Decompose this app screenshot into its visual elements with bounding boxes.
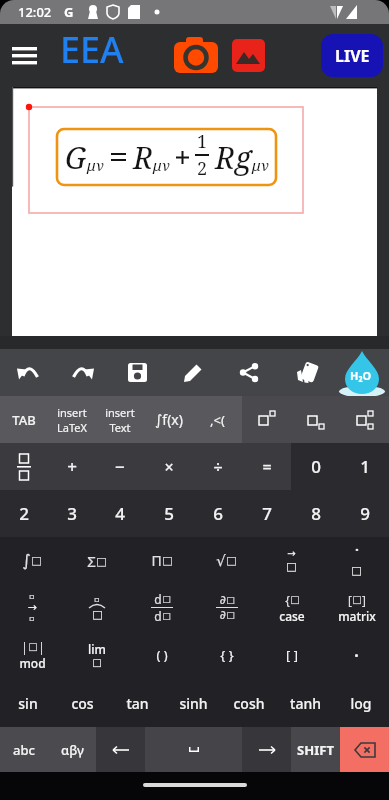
button[interactable]: d bbox=[129, 584, 194, 631]
staticText: [ ] bbox=[286, 646, 298, 664]
staticText: d bbox=[154, 591, 162, 607]
button[interactable]: ( ) bbox=[129, 631, 194, 679]
button[interactable]: [ ] bbox=[259, 631, 324, 679]
button[interactable]: { } bbox=[194, 631, 259, 679]
button[interactable]: ˙ bbox=[324, 537, 389, 584]
staticText: ∫f(x) bbox=[155, 410, 183, 429]
staticText: = bbox=[262, 456, 272, 478]
button[interactable] bbox=[0, 349, 55, 396]
button[interactable] bbox=[55, 349, 110, 396]
button[interactable]: tan bbox=[110, 679, 165, 727]
button[interactable] bbox=[8, 39, 40, 71]
staticText: sin bbox=[18, 694, 38, 713]
button[interactable]: SHIFT bbox=[291, 727, 340, 772]
staticText: ∫ bbox=[22, 551, 31, 570]
staticText: R bbox=[215, 137, 235, 178]
staticText: 12:02 bbox=[18, 3, 52, 21]
button[interactable] bbox=[230, 37, 266, 73]
button[interactable]: Σ bbox=[64, 537, 129, 584]
button[interactable]: √ bbox=[194, 537, 259, 584]
button[interactable]: 9 bbox=[340, 490, 389, 537]
staticText: log bbox=[350, 694, 372, 713]
staticText: 9 bbox=[360, 502, 370, 525]
button[interactable]: lim bbox=[64, 631, 129, 679]
button[interactable]: · bbox=[324, 631, 389, 679]
button[interactable]: + bbox=[48, 443, 96, 490]
button[interactable]: sinh bbox=[165, 679, 221, 727]
staticText: cos bbox=[71, 694, 94, 713]
button[interactable]: 8 bbox=[291, 490, 340, 537]
button[interactable]: 7 bbox=[242, 490, 291, 537]
button[interactable]: 1 bbox=[340, 443, 389, 490]
button[interactable]: ▫ bbox=[64, 584, 129, 631]
staticText: ˙ bbox=[355, 545, 359, 564]
staticText: case bbox=[279, 608, 305, 624]
button[interactable]: 6 bbox=[193, 490, 242, 537]
button[interactable] bbox=[145, 727, 242, 772]
button[interactable]: cos bbox=[55, 679, 110, 727]
staticText: □ bbox=[92, 657, 102, 669]
button[interactable] bbox=[0, 443, 48, 490]
button[interactable]: ∂ bbox=[194, 584, 259, 631]
staticText: | bbox=[38, 639, 45, 655]
button[interactable] bbox=[221, 349, 277, 396]
staticText: cosh bbox=[233, 694, 265, 713]
button[interactable]: 5 bbox=[144, 490, 193, 537]
button[interactable]: ∫f(x) bbox=[144, 396, 193, 443]
button[interactable]: → bbox=[259, 537, 324, 584]
button[interactable]: 2 bbox=[0, 490, 48, 537]
staticText: 1 bbox=[197, 129, 208, 154]
button[interactable] bbox=[173, 35, 219, 75]
staticText: tan bbox=[126, 694, 149, 713]
button[interactable]: ▫ bbox=[0, 584, 64, 631]
staticText: □ bbox=[162, 554, 173, 567]
button[interactable]: = bbox=[242, 443, 291, 490]
staticText: + bbox=[67, 455, 77, 478]
staticText: × bbox=[164, 456, 174, 478]
button[interactable]: | bbox=[0, 631, 64, 679]
button[interactable]: cosh bbox=[221, 679, 277, 727]
button[interactable] bbox=[291, 396, 340, 443]
button[interactable]: abc bbox=[0, 727, 48, 772]
button[interactable]: insert bbox=[96, 396, 144, 443]
staticText: | bbox=[21, 639, 28, 655]
button[interactable] bbox=[242, 396, 291, 443]
button[interactable]: ∫ bbox=[0, 537, 64, 584]
staticText: 2 bbox=[197, 156, 208, 181]
button[interactable] bbox=[96, 727, 145, 772]
button[interactable] bbox=[242, 727, 291, 772]
staticText: □ bbox=[28, 641, 38, 653]
staticText: ÷ bbox=[213, 456, 223, 478]
button[interactable]: log bbox=[333, 679, 389, 727]
staticText: tanh bbox=[290, 694, 321, 713]
staticText: 5 bbox=[164, 502, 174, 525]
button[interactable]: { bbox=[259, 584, 324, 631]
staticText: LIVE bbox=[335, 45, 370, 67]
button[interactable] bbox=[340, 727, 389, 772]
button[interactable]: TAB bbox=[0, 396, 48, 443]
staticText: □ bbox=[226, 554, 237, 567]
button[interactable]: tanh bbox=[277, 679, 333, 727]
button[interactable]: [ bbox=[324, 584, 389, 631]
button[interactable]: H₂O bbox=[333, 349, 389, 396]
button[interactable]: × bbox=[144, 443, 193, 490]
button[interactable]: Π bbox=[129, 537, 194, 584]
button[interactable]: ÷ bbox=[193, 443, 242, 490]
staticText: αβγ bbox=[61, 741, 84, 759]
button[interactable]: LIVE bbox=[321, 34, 383, 77]
button[interactable] bbox=[340, 396, 389, 443]
button[interactable]: ,<( bbox=[193, 396, 242, 443]
button[interactable]: 4 bbox=[96, 490, 144, 537]
button[interactable]: sin bbox=[0, 679, 55, 727]
button[interactable] bbox=[277, 349, 333, 396]
staticText: Π bbox=[151, 551, 162, 570]
button[interactable]: insert bbox=[48, 396, 96, 443]
staticText: mod bbox=[19, 655, 46, 671]
button[interactable]: 0 bbox=[291, 443, 340, 490]
button[interactable]: αβγ bbox=[48, 727, 96, 772]
staticText: □ bbox=[226, 595, 235, 605]
button[interactable] bbox=[110, 349, 165, 396]
button[interactable]: 3 bbox=[48, 490, 96, 537]
button[interactable]: − bbox=[96, 443, 144, 490]
button[interactable] bbox=[165, 349, 221, 396]
